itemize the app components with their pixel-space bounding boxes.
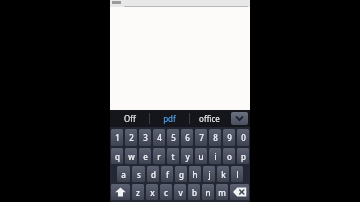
- staticText: f: [166, 169, 169, 180]
- button[interactable]: a: [117, 166, 130, 182]
- button[interactable]: 8: [209, 129, 221, 146]
- staticText: e: [143, 151, 148, 162]
- staticText: r: [157, 151, 161, 162]
- staticText: i: [214, 151, 217, 162]
- button[interactable]: i: [209, 148, 221, 164]
- button[interactable]: Show more suggestions: [231, 112, 248, 125]
- button[interactable]: p: [237, 148, 249, 164]
- button[interactable]: q: [111, 148, 123, 164]
- button[interactable]: 1: [111, 129, 123, 146]
- staticText: c: [164, 187, 168, 198]
- staticText: s: [137, 169, 141, 180]
- button[interactable]: 2: [125, 129, 137, 146]
- staticText: m: [218, 187, 226, 198]
- staticText: a: [121, 169, 126, 180]
- staticText: 4: [157, 132, 162, 143]
- button[interactable]: pdf: [150, 110, 189, 127]
- button[interactable]: x: [146, 184, 158, 200]
- staticText: w: [128, 151, 135, 162]
- staticText: 0: [241, 132, 246, 143]
- staticText: 8: [213, 132, 218, 143]
- staticText: o: [227, 151, 232, 162]
- staticText: 3: [143, 132, 148, 143]
- button[interactable]: g: [175, 166, 187, 182]
- staticText: v: [178, 187, 183, 198]
- staticText: Off: [124, 113, 136, 124]
- staticText: u: [198, 151, 204, 162]
- button[interactable]: 6: [181, 129, 193, 146]
- button[interactable]: Shift: [111, 184, 130, 200]
- staticText: y: [185, 151, 190, 162]
- staticText: pdf: [163, 113, 176, 124]
- button[interactable]: z: [132, 184, 144, 200]
- staticText: 2: [129, 132, 134, 143]
- button[interactable]: Backspace: [230, 184, 249, 200]
- staticText: office: [199, 113, 220, 124]
- staticText: z: [136, 187, 140, 198]
- staticText: h: [192, 169, 198, 180]
- button[interactable]: u: [195, 148, 207, 164]
- staticText: 1: [115, 132, 120, 143]
- button[interactable]: 0: [237, 129, 249, 146]
- staticText: d: [151, 169, 156, 180]
- staticText: t: [171, 151, 175, 162]
- button[interactable]: 5: [167, 129, 179, 146]
- button[interactable]: t: [167, 148, 179, 164]
- button[interactable]: e: [139, 148, 151, 164]
- button[interactable]: r: [153, 148, 165, 164]
- button[interactable]: j: [203, 166, 215, 182]
- button[interactable]: 4: [153, 129, 165, 146]
- button[interactable]: l: [231, 166, 243, 182]
- button[interactable]: m: [216, 184, 228, 200]
- staticText: 9: [227, 132, 232, 143]
- button[interactable]: o: [223, 148, 235, 164]
- button[interactable]: w: [125, 148, 137, 164]
- button[interactable]: h: [189, 166, 201, 182]
- button[interactable]: 7: [195, 129, 207, 146]
- button[interactable]: Off: [110, 110, 149, 127]
- button[interactable]: k: [217, 166, 229, 182]
- staticText: q: [115, 151, 120, 162]
- staticText: 5: [171, 132, 176, 143]
- button[interactable]: 9: [223, 129, 235, 146]
- button[interactable]: f: [161, 166, 173, 182]
- staticText: 7: [199, 132, 204, 143]
- button[interactable]: n: [202, 184, 214, 200]
- button[interactable]: 3: [139, 129, 151, 146]
- staticText: 6: [185, 132, 190, 143]
- staticText: b: [192, 187, 197, 198]
- staticText: l: [236, 169, 239, 180]
- button[interactable]: s: [132, 166, 145, 182]
- button[interactable]: b: [188, 184, 200, 200]
- staticText: k: [221, 169, 226, 180]
- button[interactable]: y: [181, 148, 193, 164]
- staticText: g: [179, 169, 184, 180]
- button[interactable]: c: [160, 184, 172, 200]
- staticText: p: [241, 151, 246, 162]
- staticText: j: [208, 169, 211, 180]
- staticText: n: [205, 187, 211, 198]
- button[interactable]: d: [147, 166, 159, 182]
- staticText: x: [150, 187, 155, 198]
- button[interactable]: office: [190, 110, 229, 127]
- button[interactable]: v: [174, 184, 186, 200]
